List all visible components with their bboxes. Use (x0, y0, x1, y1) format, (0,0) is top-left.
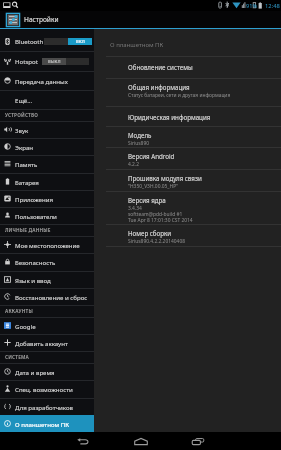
staticText: Версия ядра (128, 196, 166, 204)
staticText: Номер сборки (128, 229, 172, 237)
staticText: О планшетном ПК (110, 41, 164, 49)
staticText: Пользователи (15, 212, 57, 220)
staticText: Общая информация (128, 83, 190, 91)
staticText: Обновление системы (128, 63, 193, 71)
button[interactable]: Память (0, 155, 94, 172)
button[interactable]: Приложения (0, 190, 94, 207)
button[interactable]: Передача данных (0, 71, 94, 90)
staticText: Прошивка модуля связи (128, 174, 202, 182)
button[interactable]: Мое местоположение (0, 236, 94, 253)
staticText: 3.4.34 (128, 205, 142, 212)
staticText: softteam@pdd-build #1 (128, 211, 183, 218)
staticText: Sirius890 (128, 140, 149, 147)
staticText: О планшетном ПК (15, 420, 70, 428)
staticText: Google (15, 322, 36, 330)
staticText: Восстановление и сброс (15, 293, 88, 301)
staticText: Экран (15, 143, 34, 151)
button[interactable]: Настройки (0, 11, 281, 28)
staticText: СИСТЕМА (5, 354, 30, 360)
button[interactable]: Язык и ввод (0, 271, 94, 288)
staticText: 91% (246, 2, 258, 10)
staticText: Модель (128, 131, 152, 139)
button[interactable]: Добавить аккаунт (0, 334, 94, 351)
button[interactable]: Обновление системы (94, 56, 281, 78)
staticText: ВЫКЛ (48, 59, 61, 65)
staticText: Добавить аккаунт (15, 339, 68, 347)
button[interactable]: Звук (0, 121, 94, 138)
button[interactable]: Версия Android (94, 147, 281, 169)
button[interactable]: Дата и время (0, 363, 94, 380)
button[interactable]: Модель (94, 126, 281, 147)
staticText: УСТРОЙСТВО (5, 112, 39, 118)
button[interactable]: Bluetooth (0, 30, 94, 52)
staticText: Для разработчиков (15, 403, 74, 411)
staticText: Ещё… (15, 96, 33, 104)
button[interactable]: Home (130, 432, 152, 450)
button[interactable]: Юридическая информация (94, 106, 281, 126)
button[interactable]: Спец. возможности (0, 380, 94, 397)
button[interactable]: Recents (187, 432, 209, 450)
staticText: Батарея (15, 178, 39, 186)
staticText: Приложения (15, 195, 53, 203)
button[interactable]: Батарея (0, 173, 94, 190)
staticText: Настройки (24, 15, 59, 24)
staticText: Версия Android (128, 152, 175, 160)
staticText: Язык и ввод (15, 276, 51, 284)
button[interactable]: Безопасность (0, 253, 94, 270)
button[interactable]: Google (0, 317, 94, 334)
staticText: Статус батареи, сети и другая информация (128, 92, 231, 99)
staticText: Юридическая информация (128, 113, 211, 121)
button[interactable]: Экран (0, 138, 94, 155)
staticText: 4.2.2 (128, 161, 140, 168)
staticText: АККАУНТЫ (5, 308, 33, 314)
staticText: Мое местоположение (15, 241, 80, 249)
button[interactable]: Ещё… (0, 90, 94, 109)
staticText: Tue Apr 8 17:01:30 CST 2014 (128, 217, 193, 224)
button[interactable]: Back (72, 432, 94, 450)
button[interactable]: Восстановление и сброс (0, 288, 94, 305)
staticText: Hotspot (15, 57, 38, 65)
button[interactable]: Версия ядра (94, 191, 281, 224)
staticText: ВКЛ (76, 39, 85, 45)
staticText: Спец. возможности (15, 385, 73, 393)
button[interactable]: Номер сборки (94, 224, 281, 246)
staticText: Звук (15, 126, 29, 134)
button[interactable]: Пользователи (0, 207, 94, 224)
staticText: Память (15, 160, 38, 168)
button[interactable]: Для разработчиков (0, 398, 94, 415)
button[interactable]: О планшетном ПК (0, 415, 94, 432)
staticText: Sirius890.4.2.2.20140408 (128, 238, 186, 245)
button[interactable]: Прошивка модуля связи (94, 169, 281, 191)
staticText: "H350_V3H.00.05_HP" (128, 183, 179, 190)
button[interactable]: Hotspot (0, 51, 94, 71)
staticText: Дата и время (15, 368, 55, 376)
staticText: 12:48 (265, 2, 280, 10)
staticText: Безопасность (15, 258, 56, 266)
staticText: Передача данных (15, 77, 68, 85)
staticText: ЛИЧНЫЕ ДАННЫЕ (5, 227, 51, 233)
staticText: Bluetooth (15, 37, 44, 45)
button[interactable]: Общая информация (94, 78, 281, 106)
